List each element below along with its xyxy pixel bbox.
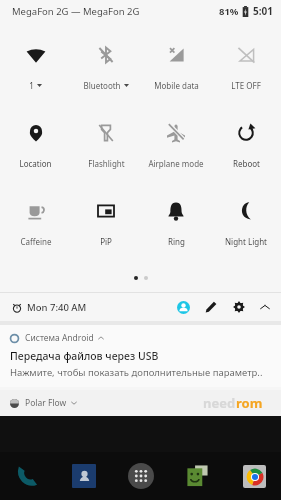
button[interactable]: Night Light [211, 184, 281, 262]
button[interactable]: Edit [197, 293, 225, 321]
staticText: 5:01 [253, 4, 273, 18]
button[interactable]: Settings [225, 293, 253, 321]
staticText: Нажмите, чтобы показать дополнительные п… [10, 366, 263, 379]
button[interactable]: PiP [71, 184, 141, 262]
staticText: MegaFon 2G — MegaFon 2G [12, 5, 140, 18]
staticText: Flashlight [88, 158, 125, 169]
button[interactable]: Messaging [180, 459, 214, 493]
staticText: Reboot [233, 158, 260, 169]
staticText: rom [236, 394, 263, 412]
staticText: LTE OFF [231, 80, 261, 91]
button[interactable]: Phone [10, 459, 44, 493]
staticText: Система Android [25, 332, 94, 344]
button[interactable]: Airplane mode [141, 106, 211, 184]
button[interactable]: Apps [124, 459, 158, 493]
staticText: Caffeine [20, 236, 52, 247]
staticText: need [203, 394, 236, 412]
staticText: Ring [168, 236, 185, 247]
button[interactable]: Polar Flow [0, 390, 281, 416]
staticText: 81% [219, 5, 239, 18]
staticText: Airplane mode [148, 158, 204, 169]
button[interactable]: Collapse [253, 293, 277, 321]
staticText: Mon 7:40 AM [27, 301, 87, 314]
button[interactable]: LTE OFF [211, 28, 281, 106]
staticText: Polar Flow [25, 397, 67, 409]
staticText: PiP [100, 236, 112, 247]
button[interactable]: Система Android [0, 325, 281, 387]
staticText: 1 [29, 80, 34, 91]
button[interactable]: Reboot [211, 106, 281, 184]
button[interactable]: Bluetooth [71, 28, 141, 106]
button[interactable]: Caffeine [0, 184, 71, 262]
button[interactable]: User [169, 293, 197, 321]
button[interactable]: Chrome [237, 459, 271, 493]
button[interactable]: 1 [0, 28, 71, 106]
staticText: Night Light [225, 236, 267, 247]
button[interactable]: Mon 7:40 AM [12, 301, 87, 314]
staticText: Mobile data [154, 80, 199, 91]
button[interactable]: Flashlight [71, 106, 141, 184]
button[interactable]: Contacts [67, 459, 101, 493]
staticText: Bluetooth [83, 80, 121, 91]
button[interactable]: Ring [141, 184, 211, 262]
button[interactable]: Location [0, 106, 71, 184]
button[interactable]: Mobile data [141, 28, 211, 106]
staticText: Передача файлов через USB [10, 349, 159, 363]
staticText: Location [19, 158, 52, 169]
